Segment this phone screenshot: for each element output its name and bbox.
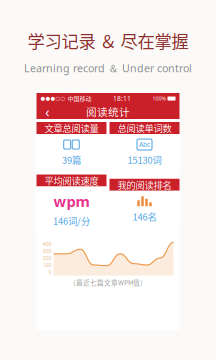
staticText: ‹	[45, 102, 50, 121]
staticText: 0	[48, 268, 51, 276]
button[interactable]: Back	[40, 104, 54, 118]
staticText: 100%	[152, 95, 165, 102]
staticText: 300	[42, 247, 51, 255]
staticText: 39篇	[62, 153, 81, 166]
staticText: 100	[42, 261, 51, 269]
staticText: 中国移动	[67, 94, 91, 103]
staticText: 146词/分	[53, 214, 90, 227]
staticText: 15130词	[127, 153, 161, 166]
staticText: 146名	[132, 210, 156, 223]
staticText: 400	[42, 240, 51, 248]
staticText: 我的阅读排名	[117, 178, 171, 191]
staticText: 总阅读单词数	[117, 121, 171, 135]
staticText: 平均阅读速度	[44, 174, 98, 187]
staticText: 学习记录 ＆ 尽在掌握	[27, 28, 188, 53]
staticText: （最近七篇文章WPM值）	[69, 277, 147, 287]
staticText: 阅读统计	[86, 104, 130, 119]
staticText: ●●●○○	[40, 95, 65, 102]
staticText: 文章总阅读量	[44, 121, 98, 135]
staticText: Learning record ＆ Under control	[24, 61, 192, 75]
staticText: 18:11	[113, 94, 131, 103]
staticText: wpm	[53, 191, 89, 211]
staticText: Abc	[139, 140, 150, 149]
staticText: 200	[42, 254, 51, 262]
